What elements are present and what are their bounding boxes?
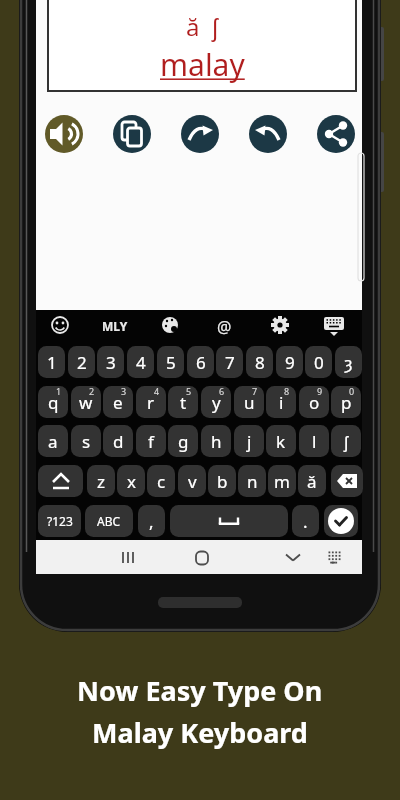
staticText: 6 <box>196 351 206 374</box>
staticText: z <box>97 470 105 493</box>
button[interactable]: o <box>299 386 329 418</box>
staticText: ?123 <box>47 513 73 529</box>
button[interactable] <box>249 115 287 153</box>
button[interactable] <box>181 115 219 153</box>
button[interactable] <box>102 312 128 338</box>
staticText: j <box>247 430 252 453</box>
button[interactable] <box>47 312 73 338</box>
staticText: b <box>217 470 228 493</box>
staticText: 5 <box>186 386 192 397</box>
staticText: 5 <box>166 351 176 374</box>
staticText: 1 <box>47 351 57 374</box>
staticText: 7 <box>225 351 235 374</box>
button[interactable]: m <box>268 465 296 497</box>
button[interactable]: c <box>147 465 175 497</box>
button[interactable] <box>320 543 348 571</box>
button[interactable] <box>114 543 142 571</box>
button[interactable]: i <box>266 386 296 418</box>
button[interactable] <box>317 115 355 153</box>
staticText: g <box>178 430 189 453</box>
button[interactable]: 7 <box>216 346 243 378</box>
button[interactable]: v <box>178 465 206 497</box>
staticText: ABC <box>97 513 121 529</box>
button[interactable] <box>157 312 183 338</box>
button[interactable]: t <box>168 386 198 418</box>
button[interactable]: q <box>38 386 68 418</box>
staticText: 2 <box>77 351 87 374</box>
button[interactable]: 0 <box>305 346 332 378</box>
button[interactable] <box>211 312 237 338</box>
button[interactable]: f <box>136 425 166 457</box>
button[interactable]: . <box>292 505 319 537</box>
button[interactable] <box>38 465 83 497</box>
button[interactable]: ȝ <box>335 346 362 378</box>
staticText: h <box>211 430 222 453</box>
button[interactable]: n <box>238 465 266 497</box>
button[interactable]: d <box>103 425 133 457</box>
button[interactable] <box>188 543 216 571</box>
button[interactable]: y <box>201 386 231 418</box>
button[interactable]: 2 <box>68 346 95 378</box>
button[interactable]: a <box>38 425 68 457</box>
button[interactable]: 4 <box>127 346 154 378</box>
button[interactable]: 1 <box>38 346 65 378</box>
staticText: r <box>147 391 155 414</box>
button[interactable]: h <box>201 425 231 457</box>
button[interactable]: 6 <box>187 346 214 378</box>
staticText: x <box>127 470 136 493</box>
button[interactable]: , <box>138 505 165 537</box>
staticText: m <box>274 470 290 493</box>
button[interactable]: w <box>71 386 101 418</box>
staticText: w <box>79 391 93 414</box>
button[interactable] <box>45 115 83 153</box>
staticText: 3 <box>121 386 127 397</box>
staticText: 2 <box>89 386 95 397</box>
button[interactable]: 8 <box>246 346 273 378</box>
staticText: e <box>113 391 123 414</box>
button[interactable]: e <box>103 386 133 418</box>
button[interactable]: ʃ <box>331 425 361 457</box>
staticText: . <box>303 510 308 533</box>
staticText: MLY <box>102 318 128 334</box>
button[interactable]: s <box>71 425 101 457</box>
staticText: u <box>244 391 255 414</box>
button[interactable]: 5 <box>157 346 184 378</box>
button[interactable]: ?123 <box>38 505 81 537</box>
staticText: Malay Keyboard <box>92 714 308 751</box>
staticText: n <box>247 470 258 493</box>
button[interactable]: r <box>136 386 166 418</box>
staticText: , <box>149 510 154 533</box>
staticText: o <box>309 391 320 414</box>
button[interactable]: u <box>234 386 264 418</box>
button[interactable]: g <box>168 425 198 457</box>
button[interactable]: p <box>331 386 361 418</box>
staticText: 3 <box>106 351 116 374</box>
staticText: 7 <box>252 386 258 397</box>
staticText: c <box>157 470 166 493</box>
button[interactable]: k <box>266 425 296 457</box>
button[interactable]: j <box>234 425 264 457</box>
button[interactable]: b <box>208 465 236 497</box>
button[interactable]: z <box>87 465 115 497</box>
button[interactable] <box>279 543 307 571</box>
staticText: 6 <box>219 386 225 397</box>
staticText: t <box>180 391 187 414</box>
button[interactable]: 9 <box>276 346 303 378</box>
button[interactable]: 3 <box>97 346 124 378</box>
staticText: i <box>279 391 284 414</box>
button[interactable] <box>113 115 151 153</box>
button[interactable] <box>331 465 363 497</box>
staticText: 9 <box>285 351 295 374</box>
button[interactable] <box>321 312 347 338</box>
staticText: ă <box>307 470 317 493</box>
staticText: f <box>148 430 154 453</box>
button[interactable]: l <box>299 425 329 457</box>
button[interactable] <box>324 505 358 537</box>
button[interactable] <box>267 312 293 338</box>
button[interactable]: ă <box>298 465 326 497</box>
button[interactable]: x <box>117 465 145 497</box>
staticText: k <box>276 430 286 453</box>
staticText: d <box>113 430 124 453</box>
button[interactable]: ABC <box>85 505 133 537</box>
button[interactable] <box>170 505 288 537</box>
